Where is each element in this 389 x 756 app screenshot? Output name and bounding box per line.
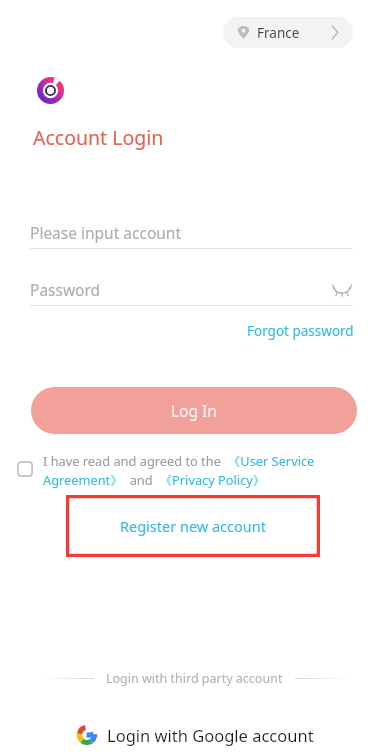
staticText: Account Login bbox=[33, 124, 164, 151]
button[interactable]: Show password bbox=[327, 275, 357, 305]
staticText: Login with Google account bbox=[107, 724, 314, 746]
staticText: Log In bbox=[171, 400, 217, 421]
button[interactable]: Please input account bbox=[30, 216, 353, 249]
staticText: Password bbox=[30, 279, 101, 300]
staticText: Register new account bbox=[120, 516, 266, 536]
staticText: Login with third party account bbox=[106, 670, 283, 686]
button[interactable]: Login with Google account bbox=[0, 717, 389, 753]
button[interactable]: Agree to terms checkbox bbox=[15, 459, 34, 478]
button[interactable]: France bbox=[223, 17, 353, 48]
button[interactable]: Password bbox=[30, 273, 353, 306]
button[interactable]: I have read and agreed to the 《User Serv… bbox=[43, 452, 363, 489]
other: App logo bbox=[37, 77, 64, 104]
button[interactable]: Register new account bbox=[66, 495, 320, 557]
staticText: France bbox=[257, 24, 300, 42]
staticText: Please input account bbox=[30, 222, 182, 243]
button[interactable]: Log In bbox=[31, 387, 357, 434]
button[interactable]: Forgot password bbox=[243, 320, 358, 342]
staticText: Forgot password bbox=[247, 322, 354, 340]
